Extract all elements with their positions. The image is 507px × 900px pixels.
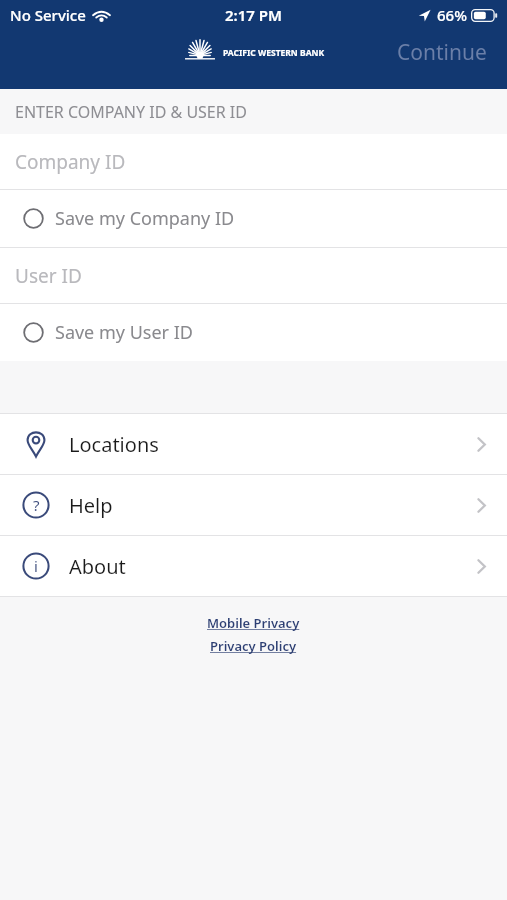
other: Help xyxy=(22,491,50,519)
staticText: Continue xyxy=(397,38,487,67)
button[interactable]: Help xyxy=(0,475,507,535)
button[interactable]: Locations xyxy=(0,414,507,474)
staticText: Save my User ID xyxy=(55,320,193,345)
staticText: 66% xyxy=(437,5,467,25)
staticText: 2:17 PM xyxy=(225,5,282,25)
button[interactable]: About xyxy=(0,536,507,596)
button[interactable]: Privacy Policy xyxy=(206,636,301,656)
staticText: Help xyxy=(69,492,113,519)
staticText: No Service xyxy=(10,5,86,25)
staticText: i xyxy=(34,556,38,576)
staticText: Save my Company ID xyxy=(55,206,235,231)
staticText: User ID xyxy=(15,263,82,289)
other: About xyxy=(22,552,50,580)
staticText: Mobile Privacy xyxy=(207,614,300,632)
staticText: ? xyxy=(33,495,40,515)
staticText: ENTER COMPANY ID & USER ID xyxy=(15,101,247,123)
button[interactable]: Mobile Privacy xyxy=(203,613,304,633)
button[interactable]: Continue xyxy=(397,38,487,67)
staticText: Company ID xyxy=(15,149,126,175)
staticText: Privacy Policy xyxy=(210,637,297,655)
button[interactable]: Save my Company ID xyxy=(0,190,507,247)
staticText: PACIFIC WESTERN BANK xyxy=(223,47,325,59)
other: Locations xyxy=(22,430,50,458)
staticText: About xyxy=(69,553,126,580)
staticText: Locations xyxy=(69,431,159,458)
button[interactable]: Save my User ID xyxy=(0,304,507,361)
